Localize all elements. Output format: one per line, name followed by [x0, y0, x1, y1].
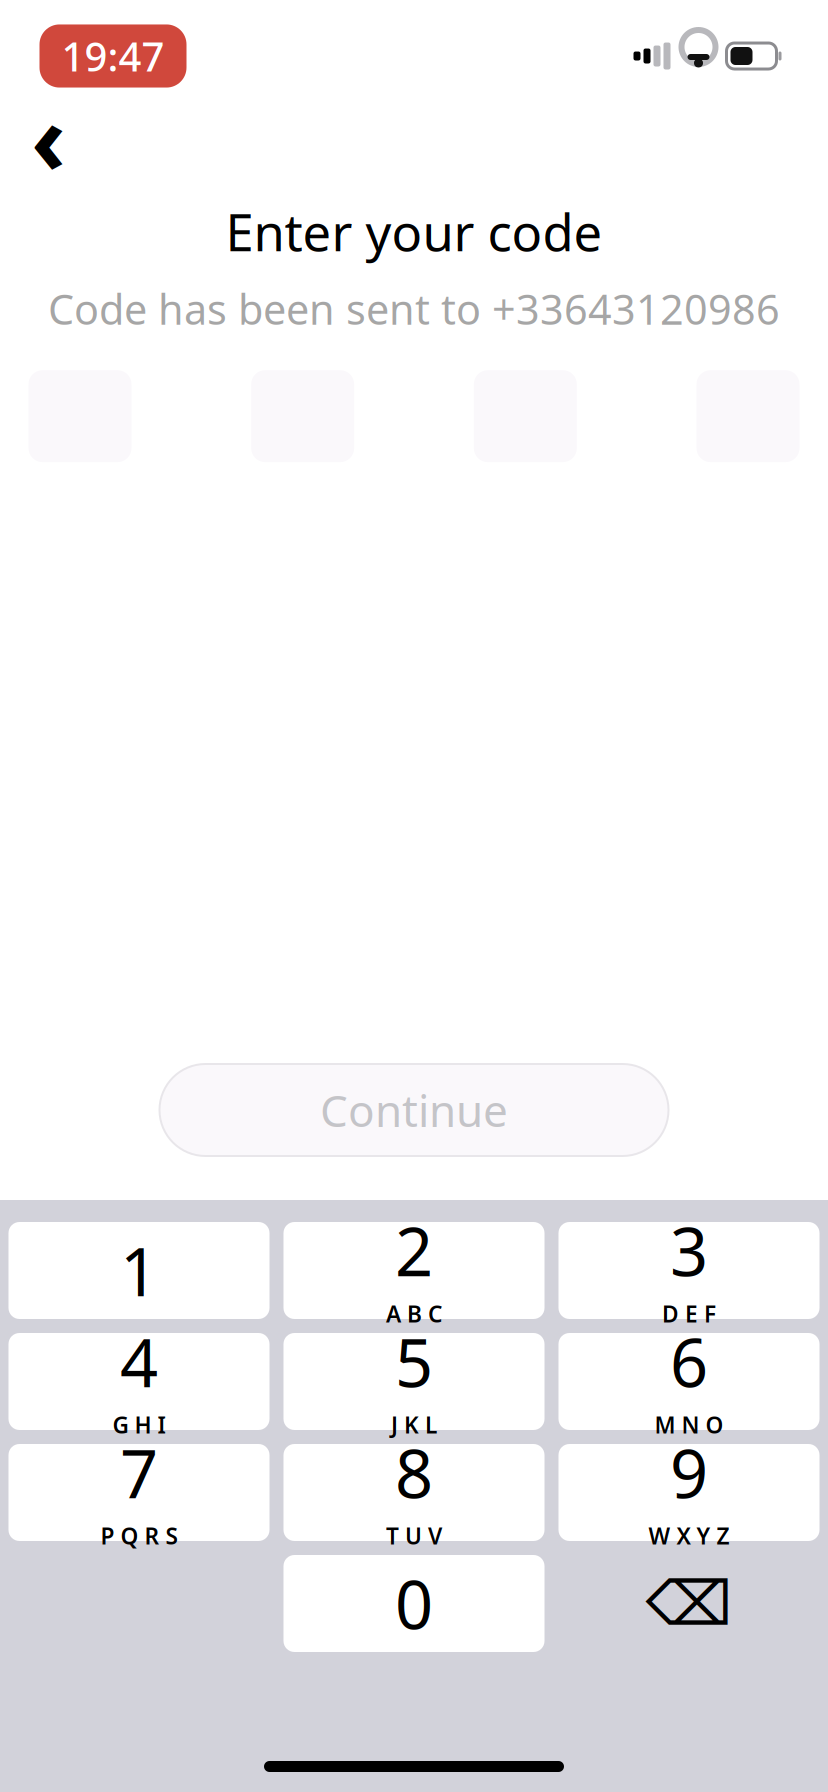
button[interactable]: 2 — [283, 1222, 544, 1319]
staticText: G H I — [112, 1410, 165, 1440]
button[interactable]: 0 — [283, 1555, 544, 1652]
staticText: 19:47 — [61, 29, 164, 82]
button[interactable]: Continue — [159, 1064, 668, 1156]
staticText: Continue — [320, 1081, 508, 1139]
button[interactable]: 6 — [558, 1333, 819, 1430]
staticText: T U V — [386, 1521, 442, 1551]
staticText: M N O — [654, 1410, 723, 1440]
button[interactable]: Back — [8, 97, 88, 177]
button[interactable]: Delete — [558, 1555, 819, 1652]
button[interactable]: 8 — [283, 1444, 544, 1541]
staticText: Enter your code — [225, 198, 602, 265]
staticText: 1 — [120, 1226, 158, 1315]
button[interactable]: 4 — [8, 1333, 269, 1430]
button[interactable]: 9 — [558, 1444, 819, 1541]
button[interactable]: 3 — [558, 1222, 819, 1319]
staticText: 9 — [670, 1428, 708, 1517]
staticText: 4 — [120, 1317, 158, 1406]
staticText: ⌫ — [645, 1569, 732, 1638]
staticText: 5 — [395, 1317, 433, 1406]
staticText: 2 — [395, 1206, 433, 1295]
staticText: D E F — [662, 1299, 716, 1329]
staticText: 0 — [395, 1559, 433, 1648]
staticText: P Q R S — [100, 1521, 177, 1551]
staticText: 3 — [670, 1206, 708, 1295]
button[interactable]: 1 — [8, 1222, 269, 1319]
staticText: 7 — [120, 1428, 158, 1517]
button[interactable]: 5 — [283, 1333, 544, 1430]
staticText: 6 — [670, 1317, 708, 1406]
staticText: Code has been sent to +33643120986 — [48, 281, 780, 336]
staticText: J K L — [391, 1410, 437, 1440]
staticText: ‹ — [31, 73, 66, 201]
button[interactable]: 7 — [8, 1444, 269, 1541]
staticText: 8 — [395, 1428, 433, 1517]
staticText: W X Y Z — [648, 1521, 729, 1551]
staticText: A B C — [386, 1299, 442, 1329]
